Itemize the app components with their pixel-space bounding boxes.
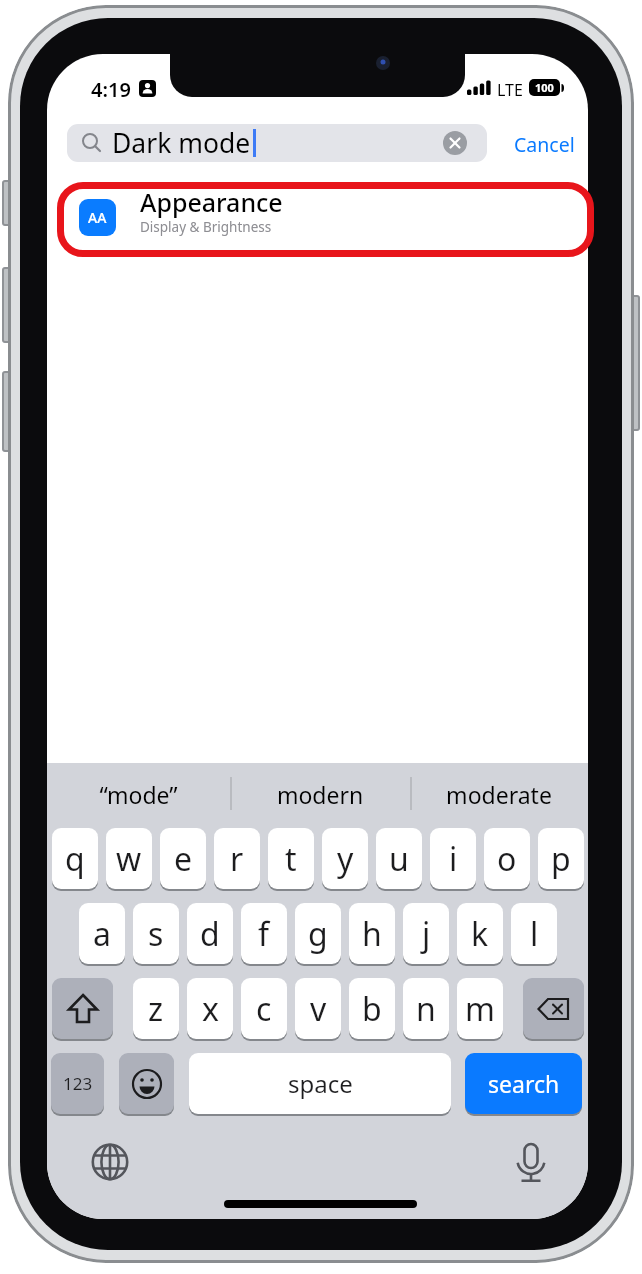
button[interactable]: d bbox=[187, 903, 233, 964]
button[interactable]: h bbox=[349, 903, 395, 964]
button[interactable]: q bbox=[52, 828, 98, 889]
staticText: b bbox=[362, 987, 382, 1031]
button[interactable]: space bbox=[189, 1053, 451, 1114]
staticText: g bbox=[308, 912, 328, 956]
button[interactable] bbox=[513, 1139, 549, 1185]
button[interactable]: f bbox=[241, 903, 287, 964]
staticText: t bbox=[285, 837, 297, 881]
staticText: c bbox=[256, 987, 272, 1031]
staticText: 100 bbox=[535, 80, 554, 95]
staticText: LTE bbox=[497, 79, 523, 101]
button[interactable]: y bbox=[322, 828, 368, 889]
staticText: i bbox=[449, 837, 458, 881]
staticText: j bbox=[422, 912, 431, 956]
button[interactable]: Cancel bbox=[514, 131, 575, 158]
staticText: u bbox=[389, 837, 409, 881]
button[interactable] bbox=[119, 1053, 174, 1114]
button[interactable]: p bbox=[538, 828, 584, 889]
staticText: w bbox=[116, 837, 142, 881]
staticText: p bbox=[551, 837, 571, 881]
staticText: n bbox=[416, 987, 436, 1031]
staticText: Display & Brightness bbox=[140, 218, 272, 236]
staticText: s bbox=[148, 912, 164, 956]
staticText: a bbox=[93, 912, 111, 956]
staticText: v bbox=[310, 987, 327, 1031]
button[interactable]: “mode” bbox=[47, 779, 230, 810]
staticText: m bbox=[465, 987, 495, 1031]
staticText: r bbox=[230, 837, 244, 881]
staticText: Appearance bbox=[140, 185, 283, 219]
staticText: f bbox=[258, 912, 270, 956]
button[interactable]: 123 bbox=[51, 1053, 104, 1114]
staticText: e bbox=[174, 837, 193, 881]
staticText: l bbox=[530, 912, 539, 956]
button[interactable]: b bbox=[349, 978, 395, 1039]
staticText: q bbox=[65, 837, 85, 881]
button[interactable] bbox=[443, 131, 467, 155]
button[interactable]: r bbox=[214, 828, 260, 889]
button[interactable]: j bbox=[403, 903, 449, 964]
button[interactable] bbox=[52, 978, 113, 1039]
button[interactable]: i bbox=[430, 828, 476, 889]
button[interactable]: e bbox=[160, 828, 206, 889]
button[interactable] bbox=[57, 182, 594, 257]
staticText: space bbox=[288, 1067, 353, 1100]
staticText: Dark mode bbox=[112, 125, 251, 161]
button[interactable]: n bbox=[403, 978, 449, 1039]
staticText: AA bbox=[88, 208, 107, 227]
button[interactable]: s bbox=[133, 903, 179, 964]
staticText: z bbox=[148, 987, 164, 1031]
button[interactable]: m bbox=[457, 978, 503, 1039]
button[interactable]: moderate bbox=[410, 779, 588, 810]
staticText: k bbox=[471, 912, 489, 956]
staticText: 4:19 bbox=[91, 76, 131, 103]
button[interactable]: o bbox=[484, 828, 530, 889]
button[interactable]: t bbox=[268, 828, 314, 889]
button[interactable]: v bbox=[295, 978, 341, 1039]
staticText: 123 bbox=[63, 1072, 93, 1095]
button[interactable]: modern bbox=[230, 779, 410, 810]
button[interactable]: g bbox=[295, 903, 341, 964]
button[interactable] bbox=[523, 978, 584, 1039]
button[interactable]: search bbox=[465, 1053, 582, 1114]
button[interactable]: w bbox=[106, 828, 152, 889]
staticText: search bbox=[488, 1068, 560, 1099]
button[interactable]: k bbox=[457, 903, 503, 964]
button[interactable]: c bbox=[241, 978, 287, 1039]
staticText: h bbox=[362, 912, 382, 956]
staticText: x bbox=[202, 987, 219, 1031]
button[interactable] bbox=[67, 124, 487, 162]
button[interactable]: u bbox=[376, 828, 422, 889]
staticText: o bbox=[497, 837, 517, 881]
button[interactable]: x bbox=[187, 978, 233, 1039]
staticText: y bbox=[337, 837, 354, 881]
staticText: d bbox=[200, 912, 220, 956]
button[interactable]: a bbox=[79, 903, 125, 964]
button[interactable] bbox=[91, 1143, 129, 1181]
button[interactable]: z bbox=[133, 978, 179, 1039]
button[interactable]: l bbox=[511, 903, 557, 964]
